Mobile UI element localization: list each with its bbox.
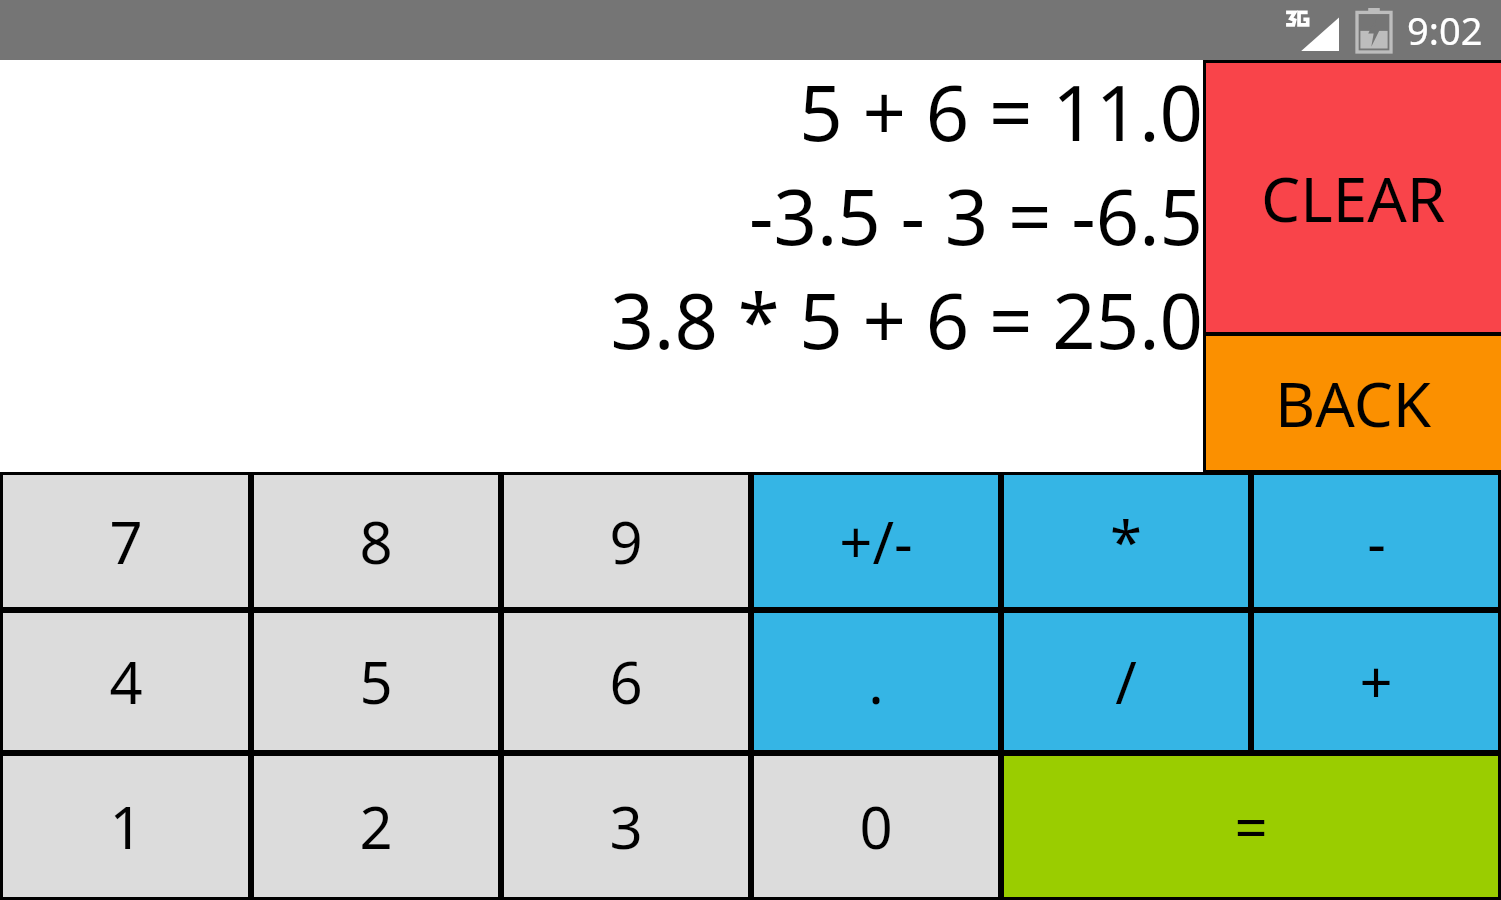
staticText: 9:02 [1407, 4, 1483, 56]
staticText: - [1367, 502, 1386, 581]
staticText: 0 [859, 787, 893, 866]
button[interactable]: 4 [3, 613, 248, 750]
staticText: 3 [609, 787, 643, 866]
button[interactable]: CLEAR [1206, 63, 1501, 332]
staticText: 5 + 6 = 11.0 [0, 60, 1203, 164]
staticText: 9 [609, 502, 643, 581]
button[interactable]: 0 [754, 756, 998, 897]
button[interactable]: 2 [254, 756, 498, 897]
staticText: 2 [359, 787, 393, 866]
button[interactable]: 8 [254, 475, 498, 607]
staticText: * [1110, 502, 1142, 581]
button[interactable]: BACK [1206, 336, 1501, 470]
staticText: 5 [359, 642, 393, 721]
other: Mobile signal 3G [1285, 9, 1339, 51]
other: Battery charging [1357, 8, 1391, 52]
button[interactable]: + [1254, 613, 1498, 750]
button[interactable]: * [1004, 475, 1248, 607]
button[interactable]: 3 [504, 756, 748, 897]
staticText: = [1234, 787, 1268, 866]
staticText: -3.5 - 3 = -6.5 [0, 164, 1203, 268]
staticText: 8 [359, 502, 393, 581]
staticText: . [868, 642, 884, 721]
staticText: 6 [609, 642, 643, 721]
button[interactable]: 9 [504, 475, 748, 607]
button[interactable]: . [754, 613, 998, 750]
button[interactable]: +/- [754, 475, 998, 607]
staticText: 4 [109, 642, 143, 721]
button[interactable]: 1 [3, 756, 248, 897]
button[interactable]: 6 [504, 613, 748, 750]
button[interactable]: - [1254, 475, 1498, 607]
button[interactable]: / [1004, 613, 1248, 750]
staticText: +/- [839, 502, 913, 581]
button[interactable]: 5 [254, 613, 498, 750]
staticText: + [1359, 642, 1393, 721]
staticText: CLEAR [1261, 156, 1446, 240]
button[interactable]: = [1004, 756, 1498, 897]
staticText: / [1115, 642, 1137, 721]
staticText: 3.8 * 5 + 6 = 25.0 [0, 268, 1203, 372]
staticText: 7 [109, 502, 143, 581]
button[interactable]: 7 [3, 475, 248, 607]
staticText: BACK [1275, 361, 1432, 445]
staticText: 1 [109, 787, 143, 866]
